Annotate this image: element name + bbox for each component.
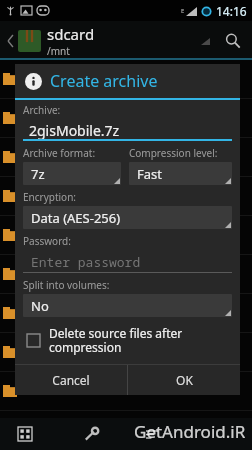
staticText: Encryption: [23,190,77,204]
button[interactable]: No [23,294,232,317]
staticText: Enter password [31,253,141,271]
staticText: OK [176,372,193,388]
staticText: Data (AES-256) [31,209,121,227]
button[interactable]: Data (AES-256) [23,206,232,229]
staticText: Fast [137,165,162,183]
staticText: Delete source files after compression [49,325,232,356]
staticText: /mnt [47,44,70,58]
staticText: Archive format: [23,146,96,160]
staticText: 2gisMobile.7z [29,121,120,140]
button[interactable]: Cancel [15,365,127,395]
button[interactable]: OK [128,365,240,395]
button[interactable]: Menu [140,422,164,446]
staticText: E [181,7,185,15]
staticText: Compression level: [129,146,218,160]
staticText: Archive: [23,103,61,117]
button[interactable]: Fast [129,162,232,185]
button[interactable]: Back [4,26,16,56]
staticText: Create archive [50,70,158,92]
button[interactable]: Delete source files after compression [23,323,232,358]
staticText: No [31,297,49,315]
staticText: GetAndroid.iR [134,420,246,443]
button[interactable]: 7z [23,162,121,185]
staticText: Split into volumes: [23,278,110,292]
button[interactable]: Search [220,26,246,56]
button[interactable]: Tools [78,421,104,447]
button[interactable]: Enter password [23,250,232,273]
staticText: 14:16 [216,3,247,19]
button[interactable]: Sort [196,26,214,56]
staticText: Password: [23,234,71,248]
button[interactable]: Apps [12,421,38,447]
staticText: sdcard [47,24,95,44]
staticText: 7z [31,165,45,183]
button[interactable]: 2gisMobile.7z [23,119,232,141]
staticText: Cancel [52,372,90,388]
